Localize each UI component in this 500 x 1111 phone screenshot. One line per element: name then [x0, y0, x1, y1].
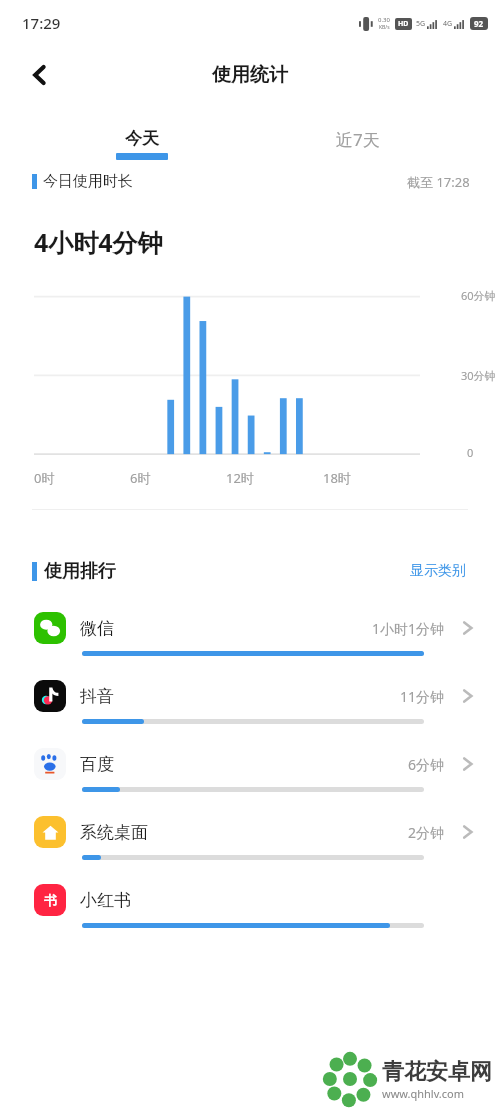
button[interactable]: 百度 [0, 738, 500, 806]
staticText: KB/s [379, 24, 390, 31]
staticText: 60分钟 [461, 288, 496, 303]
staticText: 1小时1分钟 [372, 619, 445, 638]
staticText: 5G [416, 19, 426, 29]
button[interactable]: 显示类别 [406, 558, 470, 584]
staticText: 2分钟 [408, 823, 445, 842]
staticText: 12时 [226, 469, 254, 487]
staticText: 4G [443, 19, 453, 29]
staticText: 近7天 [336, 128, 380, 151]
staticText: 抖音 [80, 686, 114, 707]
staticText: 11分钟 [400, 687, 445, 706]
staticText: 百度 [80, 754, 114, 775]
button[interactable]: Back [18, 53, 62, 97]
staticText: 青花安卓网 [382, 1058, 492, 1086]
staticText: 6分钟 [408, 755, 445, 774]
staticText: 92 [474, 18, 484, 29]
staticText: 显示类别 [410, 562, 466, 580]
staticText: 使用统计 [212, 63, 288, 87]
staticText: 系统桌面 [80, 822, 148, 843]
staticText: 0 [467, 445, 474, 460]
staticText: 18时 [323, 469, 351, 487]
staticText: 0时 [34, 469, 55, 487]
staticText: 截至 17:28 [407, 173, 470, 191]
button[interactable]: 今天 [102, 126, 182, 162]
staticText: www.qhhlv.com [382, 1086, 464, 1101]
staticText: 4小时4分钟 [34, 225, 163, 259]
staticText: 今天 [125, 128, 159, 149]
button[interactable]: 微信 [0, 602, 500, 670]
staticText: HD [398, 19, 409, 29]
staticText: 0.30 [378, 16, 390, 24]
button[interactable]: 书 [0, 874, 500, 942]
button[interactable]: 系统桌面 [0, 806, 500, 874]
staticText: 小红书 [80, 890, 131, 911]
staticText: 微信 [80, 618, 114, 639]
staticText: 使用排行 [44, 560, 116, 583]
button[interactable]: 近7天 [322, 126, 394, 153]
staticText: 17:29 [22, 13, 61, 33]
staticText: 30分钟 [461, 368, 496, 383]
staticText: 6时 [130, 469, 151, 487]
staticText: 今日使用时长 [43, 172, 133, 191]
button[interactable]: 抖音 [0, 670, 500, 738]
staticText: 书 [44, 892, 57, 908]
